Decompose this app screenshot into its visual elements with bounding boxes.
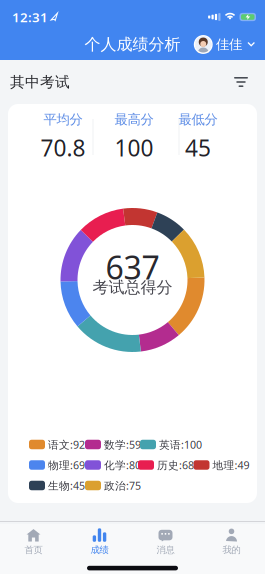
staticText: 物理:69 — [48, 458, 85, 472]
staticText: 最低分 — [178, 111, 217, 128]
staticText: 佳佳 — [216, 36, 242, 53]
staticText: 637 — [105, 246, 159, 288]
button[interactable]: 消息 — [132, 526, 198, 558]
button[interactable]: 成绩 — [66, 526, 132, 558]
button[interactable]: 我的 — [198, 526, 264, 558]
button[interactable]: 账户 佳佳 — [194, 36, 255, 53]
staticText: 100 — [114, 133, 153, 163]
staticText: 政治:75 — [104, 478, 141, 493]
staticText: 语文:92 — [48, 437, 85, 452]
button[interactable]: 首页 — [0, 526, 66, 558]
staticText: 70.8 — [40, 133, 85, 163]
staticText: 消息 — [156, 544, 174, 556]
staticText: 地理:49 — [212, 458, 249, 472]
staticText: 个人成绩分析 — [84, 35, 180, 54]
staticText: 历史:68 — [157, 458, 194, 472]
staticText: 首页 — [24, 544, 42, 556]
staticText: 英语:100 — [159, 437, 202, 452]
staticText: 我的 — [222, 544, 240, 556]
staticText: 成绩 — [90, 544, 108, 556]
staticText: 12:31 — [12, 8, 48, 26]
staticText: 数学:59 — [104, 437, 141, 452]
staticText: 最高分 — [114, 111, 153, 128]
staticText: 45 — [185, 133, 211, 163]
staticText: 化学:80 — [104, 458, 141, 472]
staticText: 生物:45 — [48, 478, 85, 493]
button[interactable]: 筛选 — [231, 74, 251, 90]
staticText: 其中考试 — [10, 73, 70, 91]
staticText: 平均分 — [43, 111, 82, 128]
staticText: 考试总得分 — [92, 278, 172, 297]
